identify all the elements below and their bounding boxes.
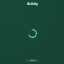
staticText: Activity [27, 2, 38, 6]
button[interactable]: Start [26, 59, 39, 62]
button[interactable]: Activity [1, 2, 63, 6]
staticText: Start [30, 59, 35, 62]
button[interactable]: Activity progress [28, 29, 37, 38]
